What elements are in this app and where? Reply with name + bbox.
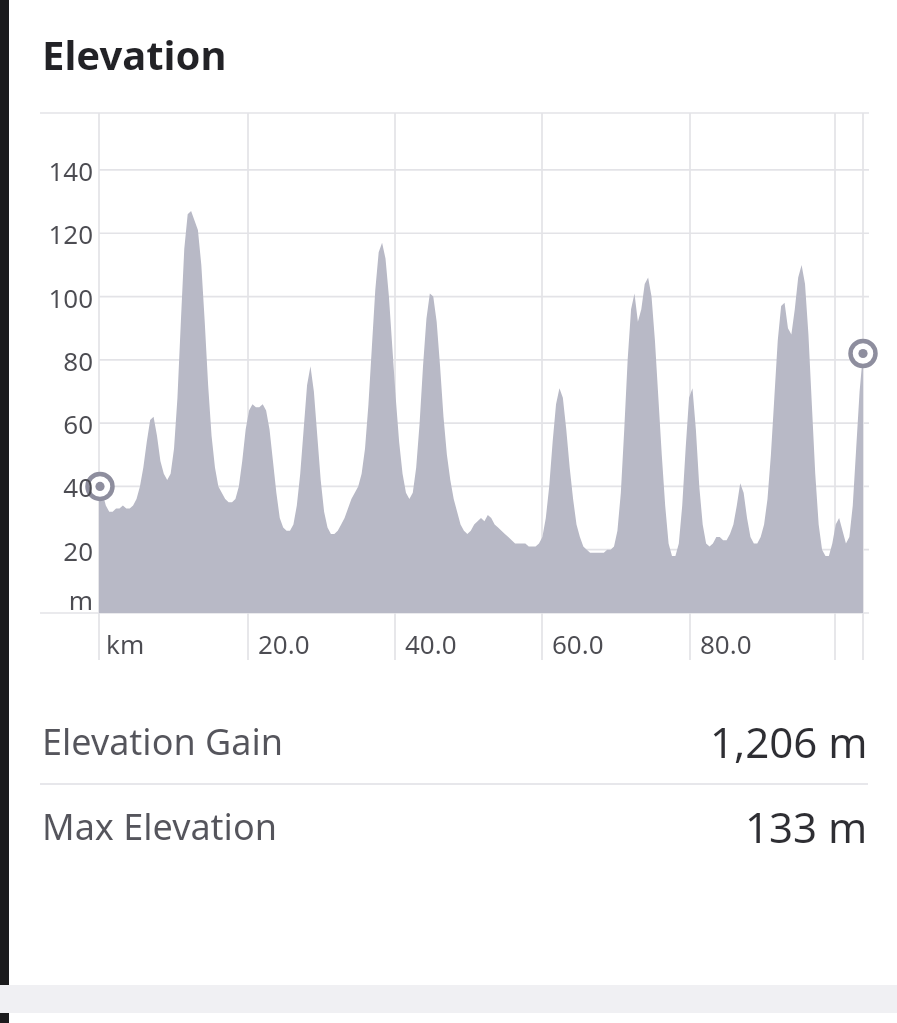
staticText: Elevation <box>42 27 227 81</box>
staticText: 120 <box>26 216 93 251</box>
staticText: Max Elevation <box>42 802 277 851</box>
staticText: 40.0 <box>405 626 457 661</box>
staticText: km <box>106 626 145 661</box>
staticText: 80 <box>26 343 93 378</box>
staticText: 133 m <box>745 798 868 855</box>
staticText: 20 <box>26 533 93 568</box>
staticText: 80.0 <box>700 626 752 661</box>
staticText: 100 <box>26 280 93 315</box>
other: Elevation profile chart <box>0 0 897 1023</box>
button[interactable]: Max Elevation <box>0 785 897 868</box>
staticText: 140 <box>26 153 93 188</box>
staticText: 20.0 <box>258 626 310 661</box>
staticText: m <box>26 582 93 617</box>
staticText: 60.0 <box>552 626 604 661</box>
button[interactable]: Elevation Gain <box>0 700 897 783</box>
staticText: 60 <box>26 406 93 441</box>
staticText: Elevation Gain <box>42 717 283 766</box>
staticText: 1,206 m <box>710 713 868 770</box>
staticText: 40 <box>26 469 93 504</box>
